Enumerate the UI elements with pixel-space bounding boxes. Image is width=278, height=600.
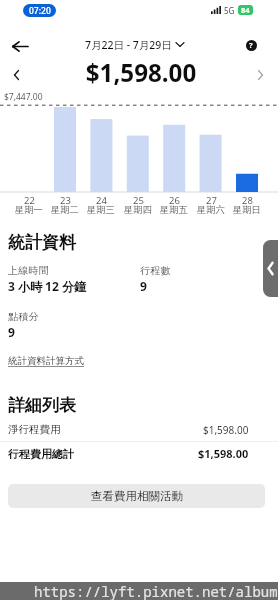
- staticText: 星期五: [160, 204, 188, 216]
- staticText: 7月22日 - 7月29日: [85, 38, 172, 52]
- staticText: 星期三: [87, 204, 115, 216]
- button[interactable]: Expand panel: [263, 240, 278, 297]
- button[interactable]: Help: [240, 34, 262, 56]
- button[interactable]: 統計資料計算方式: [8, 355, 84, 367]
- button[interactable]: Back: [7, 33, 33, 59]
- staticText: https://lyft.pixnet.net/album: [34, 582, 278, 600]
- staticText: 詳細列表: [8, 395, 76, 416]
- staticText: 22: [24, 194, 35, 207]
- staticText: ?: [249, 40, 253, 50]
- staticText: 23: [60, 194, 71, 207]
- button[interactable]: Previous week: [5, 64, 27, 86]
- staticText: 統計資料: [8, 232, 76, 253]
- staticText: 行程數: [140, 264, 171, 277]
- staticText: 07:20: [29, 5, 51, 17]
- staticText: 星期一: [15, 204, 43, 216]
- button[interactable]: 查看費用相關活動: [8, 484, 265, 508]
- staticText: 9: [8, 324, 15, 340]
- staticText: 9: [140, 278, 147, 294]
- staticText: 行程費用總計: [8, 447, 198, 461]
- staticText: 星期四: [124, 204, 152, 216]
- staticText: $1,598.00: [198, 446, 249, 461]
- button[interactable]: 7月22日 - 7月29日: [85, 36, 184, 53]
- staticText: 星期日: [233, 204, 261, 216]
- staticText: $7,447.00: [4, 91, 43, 103]
- staticText: 5G: [224, 5, 235, 16]
- staticText: 24: [96, 194, 107, 207]
- staticText: $1,598.00: [203, 423, 249, 437]
- staticText: 星期二: [51, 204, 79, 216]
- staticText: 查看費用相關活動: [91, 489, 183, 503]
- staticText: 上線時間: [8, 264, 50, 277]
- staticText: 26: [169, 194, 180, 207]
- staticText: 28: [242, 194, 253, 207]
- staticText: $1,598.00: [2, 56, 278, 89]
- staticText: 84: [241, 5, 250, 15]
- staticText: 點積分: [8, 310, 39, 323]
- staticText: 星期六: [197, 204, 225, 216]
- staticText: 25: [133, 194, 144, 207]
- staticText: 淨行程費用: [8, 423, 203, 436]
- staticText: 27: [206, 194, 217, 207]
- button[interactable]: 淨行程費用: [8, 421, 249, 438]
- button[interactable]: Next week: [249, 64, 271, 86]
- staticText: 3 小時 12 分鐘: [8, 278, 86, 294]
